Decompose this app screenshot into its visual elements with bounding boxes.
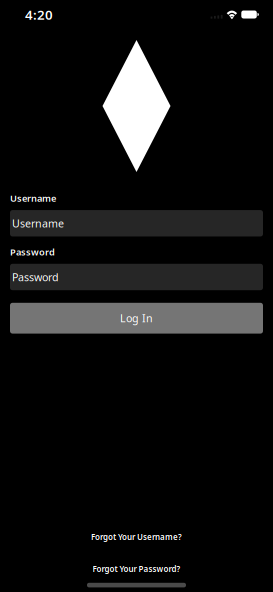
staticText: Forgot Your Password? [92, 563, 180, 574]
button[interactable]: Password [10, 264, 263, 290]
button[interactable]: Forgot Your Password? [84, 561, 188, 577]
staticText: Password [12, 270, 59, 284]
button[interactable]: Username [10, 210, 263, 236]
staticText: Password [10, 246, 55, 258]
staticText: Forgot Your Username? [91, 531, 182, 542]
staticText: Log In [120, 311, 153, 325]
staticText: Username [12, 216, 64, 230]
staticText: 4:20 [25, 6, 53, 23]
staticText: Username [10, 192, 56, 204]
button[interactable]: Forgot Your Username? [83, 529, 190, 545]
button[interactable]: Log In [10, 303, 263, 334]
